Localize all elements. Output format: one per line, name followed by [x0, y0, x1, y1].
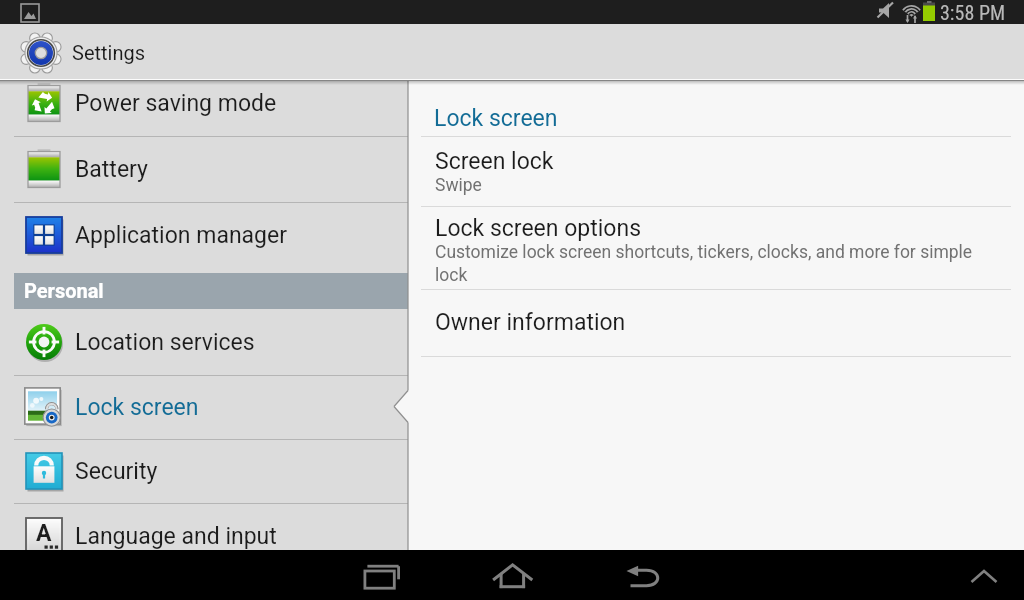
- button[interactable]: Battery: [0, 136, 408, 202]
- staticText: Location services: [75, 329, 255, 356]
- button[interactable]: Back: [614, 550, 660, 600]
- staticText: 3:58 PM: [940, 1, 1006, 24]
- staticText: Application manager: [75, 222, 288, 249]
- staticText: Customize lock screen shortcuts, tickers…: [435, 242, 981, 285]
- staticText: Battery: [75, 156, 148, 183]
- button[interactable]: [409, 289, 1024, 356]
- staticText: Security: [75, 458, 158, 485]
- button[interactable]: Recents: [352, 550, 398, 600]
- staticText: Lock screen: [434, 105, 558, 132]
- staticText: Screen lock: [435, 148, 554, 175]
- staticText: Lock screen options: [435, 215, 642, 242]
- staticText: Personal: [24, 279, 104, 302]
- staticText: Swipe: [435, 175, 482, 196]
- button[interactable]: [409, 206, 1024, 289]
- staticText: Power saving mode: [75, 90, 277, 117]
- button[interactable]: Lock screen: [434, 105, 558, 132]
- button[interactable]: Security: [0, 439, 408, 503]
- staticText: Settings: [72, 41, 146, 64]
- button[interactable]: A: [0, 503, 408, 569]
- button[interactable]: Settings: [21, 24, 1024, 81]
- button[interactable]: Home: [478, 550, 524, 600]
- button[interactable]: Application manager: [0, 202, 408, 268]
- staticText: Owner information: [435, 309, 626, 336]
- staticText: Language and input: [75, 523, 277, 550]
- staticText: Lock screen: [75, 394, 199, 421]
- button[interactable]: Expand: [961, 550, 1007, 600]
- button[interactable]: Lock screen: [0, 375, 408, 439]
- button[interactable]: [409, 136, 1024, 206]
- button[interactable]: Power saving mode: [0, 70, 408, 136]
- button[interactable]: Location services: [0, 309, 408, 375]
- staticText: A: [36, 520, 52, 547]
